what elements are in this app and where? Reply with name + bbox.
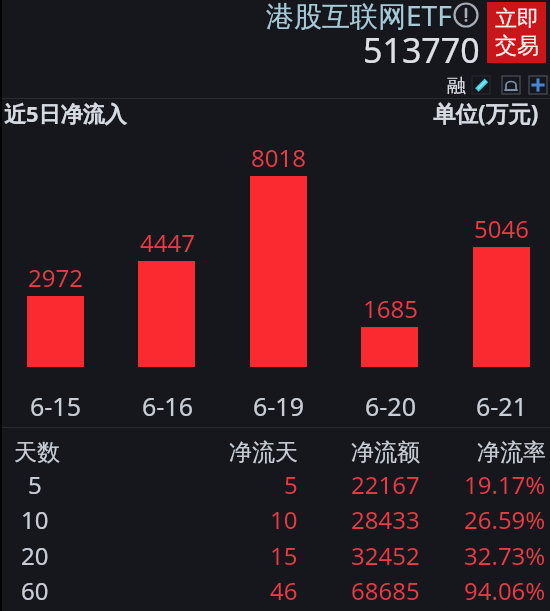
button[interactable]: 513770 xyxy=(358,27,475,67)
button[interactable]: Price alert xyxy=(502,76,520,94)
staticText: 5 xyxy=(28,468,42,501)
button[interactable]: Add to watchlist xyxy=(529,76,547,94)
button[interactable]: 6-16 4447 xyxy=(112,100,222,425)
staticText: 6-21 xyxy=(476,389,527,423)
staticText: 22167 xyxy=(351,468,420,501)
staticText: 净流率 xyxy=(477,438,546,467)
button[interactable]: 港股互联网ETF xyxy=(260,0,446,36)
staticText: 立即 交易 xyxy=(495,5,539,60)
button[interactable]: Edit xyxy=(472,76,490,94)
staticText: 近5日净流入 xyxy=(4,98,127,128)
button[interactable]: Fund information xyxy=(452,1,480,29)
staticText: 46 xyxy=(270,574,298,607)
staticText: 28433 xyxy=(351,503,420,536)
staticText: 6-19 xyxy=(253,389,304,423)
staticText: 港股互联网ETF xyxy=(266,0,452,34)
staticText: 10 xyxy=(21,503,49,536)
button[interactable]: 20 xyxy=(0,530,550,565)
staticText: 15 xyxy=(270,539,298,572)
staticText: 32452 xyxy=(351,539,420,572)
button[interactable]: 10 xyxy=(0,494,550,529)
staticText: 6-15 xyxy=(30,389,81,423)
staticText: 6-16 xyxy=(142,389,193,423)
staticText: 融 xyxy=(447,74,466,96)
button[interactable]: 6-20 1685 xyxy=(335,100,445,425)
staticText: 8018 xyxy=(251,141,306,174)
staticText: 4447 xyxy=(140,226,195,259)
staticText: 天数 xyxy=(14,438,60,467)
button[interactable]: 6-15 2972 xyxy=(0,100,110,425)
staticText: 5 xyxy=(284,468,298,501)
button[interactable]: 60 xyxy=(0,565,550,600)
staticText: 60 xyxy=(21,574,49,607)
button[interactable]: 6-21 5046 xyxy=(446,100,550,425)
staticText: 513770 xyxy=(363,27,480,67)
staticText: 26.59% xyxy=(464,503,546,536)
staticText: 20 xyxy=(21,539,49,572)
button[interactable]: Margin trading xyxy=(445,72,467,94)
staticText: 19.17% xyxy=(464,468,546,501)
button[interactable]: 5 xyxy=(0,459,550,494)
staticText: 5046 xyxy=(474,212,529,245)
button[interactable]: 立即 交易 xyxy=(487,2,546,63)
staticText: 1685 xyxy=(363,292,418,325)
staticText: 6-20 xyxy=(365,389,416,423)
staticText: 10 xyxy=(270,503,298,536)
staticText: 68685 xyxy=(351,574,420,607)
staticText: 净流额 xyxy=(351,438,420,467)
staticText: 单位(万元) xyxy=(433,98,539,129)
staticText: 2972 xyxy=(28,261,83,294)
staticText: 32.73% xyxy=(464,539,546,572)
button[interactable]: 6-19 8018 xyxy=(223,100,333,425)
staticText: 94.06% xyxy=(464,574,546,607)
staticText: 净流天 xyxy=(229,438,298,467)
